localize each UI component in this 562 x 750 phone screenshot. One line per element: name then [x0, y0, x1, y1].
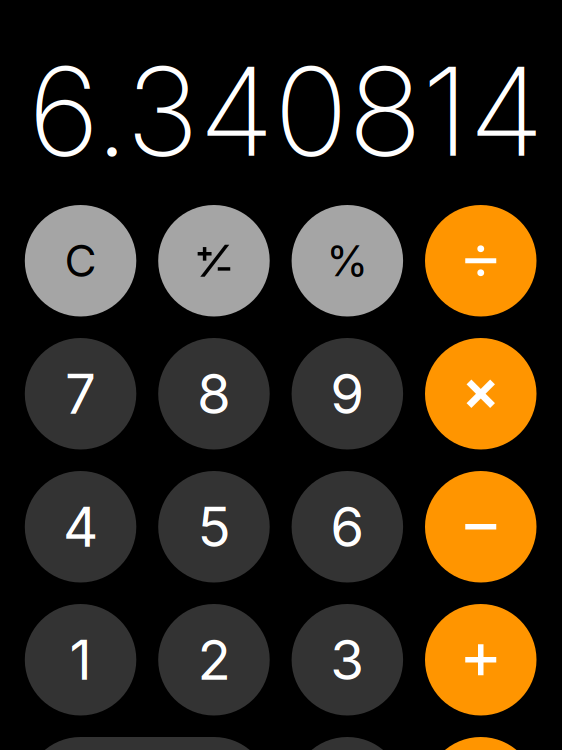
staticText: 3 [330, 627, 364, 693]
staticText: 2 [197, 627, 230, 693]
staticText: 1 [69, 627, 91, 693]
button[interactable]: 0 [25, 737, 270, 750]
staticText: 4 [63, 494, 98, 560]
staticText: 5 [197, 494, 230, 560]
button[interactable]: Add [425, 604, 536, 715]
button[interactable]: 4 [25, 471, 136, 582]
staticText: 8 [197, 361, 231, 427]
staticText: 6 [330, 494, 364, 560]
staticText: C [64, 234, 96, 287]
button[interactable]: Subtract [425, 471, 536, 582]
button[interactable]: 3 [292, 604, 403, 715]
button[interactable]: 2 [158, 604, 270, 715]
button[interactable]: Equals [425, 737, 536, 750]
staticText: 7 [65, 361, 96, 427]
button[interactable]: 6 [292, 471, 403, 582]
button[interactable]: 8 [158, 338, 270, 449]
staticText: % [326, 235, 368, 286]
button[interactable]: 9 [292, 338, 403, 449]
button[interactable]: 5 [158, 471, 270, 582]
button[interactable]: 7 [25, 338, 136, 449]
button[interactable]: Divide [425, 205, 536, 316]
button[interactable]: Decimal point [292, 737, 403, 750]
button[interactable]: Clear [25, 205, 136, 316]
button[interactable]: Percent [292, 205, 403, 316]
staticText: 9 [330, 361, 364, 427]
button[interactable]: 1 [25, 604, 136, 715]
button[interactable]: Multiply [425, 338, 536, 449]
button[interactable]: Toggle sign [158, 205, 270, 316]
staticText: 6.340814 [28, 37, 544, 185]
